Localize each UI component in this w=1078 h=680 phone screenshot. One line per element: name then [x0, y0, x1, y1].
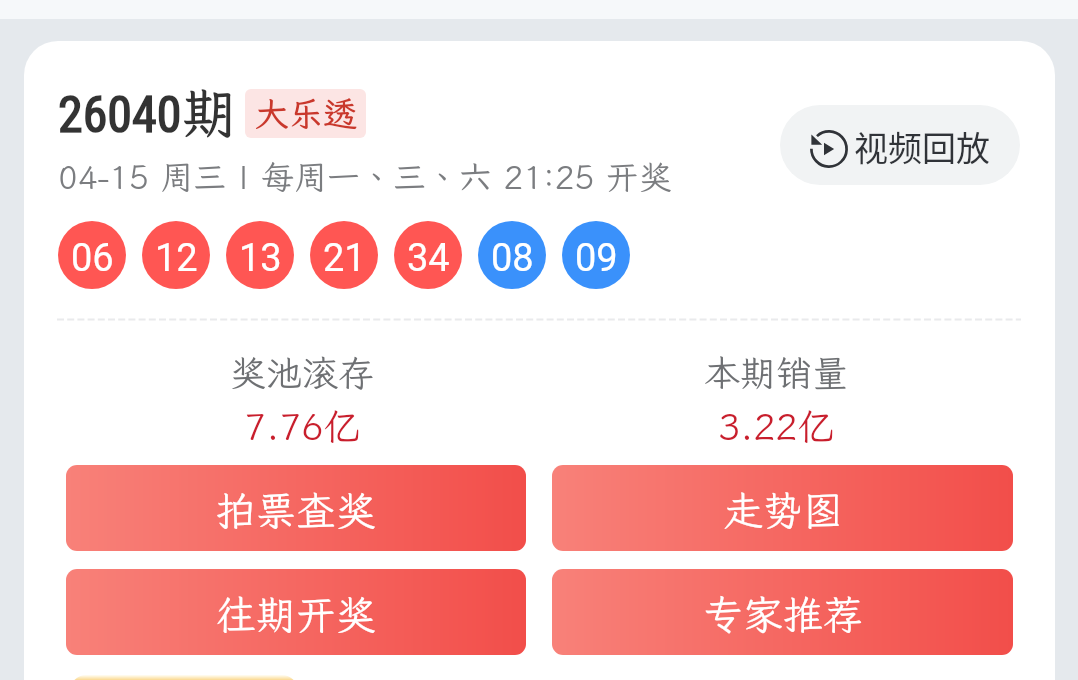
- button[interactable]: [70, 675, 298, 680]
- other: 视频回放: [810, 130, 848, 168]
- staticText: 本期销量: [704, 349, 849, 396]
- button[interactable]: 走势图: [552, 465, 1013, 551]
- staticText: 04-15 周三 | 每周一、三、六 21:25 开奖: [58, 155, 672, 198]
- staticText: 专家推荐: [703, 588, 863, 641]
- button[interactable]: 21: [310, 221, 378, 289]
- staticText: 大乐透: [255, 91, 357, 136]
- staticText: 拍票查奖: [216, 484, 376, 537]
- staticText: 21: [323, 236, 366, 281]
- button[interactable]: 往期开奖: [66, 569, 526, 655]
- staticText: 7.76亿: [244, 402, 361, 451]
- staticText: 13: [239, 236, 282, 281]
- staticText: 往期开奖: [216, 588, 376, 641]
- staticText: 12: [155, 236, 198, 281]
- button[interactable]: 13: [226, 221, 294, 289]
- staticText: 视频回放: [854, 122, 990, 171]
- button[interactable]: 09: [562, 221, 630, 289]
- staticText: 走势图: [723, 484, 843, 537]
- button[interactable]: 视频回放: [780, 105, 1020, 185]
- staticText: 26040: [58, 86, 182, 145]
- button[interactable]: 大乐透: [245, 89, 366, 138]
- button[interactable]: 34: [394, 221, 462, 289]
- staticText: 09: [575, 236, 618, 281]
- staticText: 06: [71, 236, 114, 281]
- staticText: 3.22亿: [718, 402, 835, 451]
- staticText: 34: [407, 236, 450, 281]
- button[interactable]: 08: [478, 221, 546, 289]
- button[interactable]: 拍票查奖: [66, 465, 526, 551]
- staticText: 08: [491, 236, 534, 281]
- staticText: 期: [182, 76, 238, 148]
- button[interactable]: 12: [142, 221, 210, 289]
- button[interactable]: 06: [58, 221, 126, 289]
- staticText: 奖池滚存: [230, 349, 375, 396]
- button[interactable]: 专家推荐: [552, 569, 1013, 655]
